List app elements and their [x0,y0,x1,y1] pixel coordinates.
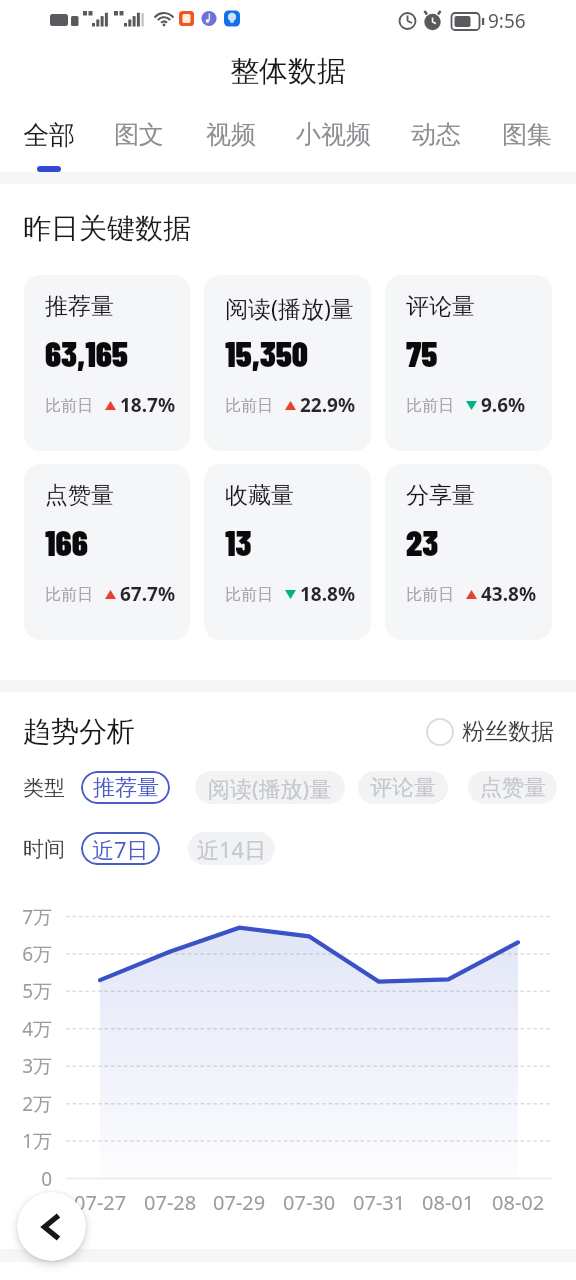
staticText: 比前日 [406,585,454,605]
staticText: 166 [45,521,88,563]
staticText: 动态 [411,119,461,150]
staticText: 比前日 [225,585,273,605]
button[interactable]: 近14日 [188,832,275,865]
staticText: 07-27 [74,1189,127,1215]
staticText: 图集 [502,119,552,150]
staticText: 07-29 [213,1189,266,1215]
staticText: 昨日关键数据 [23,211,191,246]
staticText: 比前日 [406,396,454,416]
staticText: 63,165 [45,332,128,374]
button[interactable]: 阅读(播放)量 [204,275,371,451]
button[interactable]: 粉丝数据 [426,717,554,746]
staticText: 近7日 [92,834,149,864]
staticText: 推荐量 [93,774,159,802]
button[interactable]: Back [17,1192,86,1261]
button[interactable]: 阅读(播放)量 [195,771,345,804]
staticText: 全部 [23,119,75,152]
button[interactable]: 评论量 [358,771,448,804]
staticText: 07-30 [283,1189,336,1215]
staticText: 比前日 [45,396,93,416]
staticText: 6万 [22,941,52,967]
staticText: 小视频 [296,119,371,150]
staticText: 5万 [22,978,52,1004]
staticText: 推荐量 [45,292,114,321]
staticText: 评论量 [406,292,475,321]
staticText: 07-31 [353,1189,406,1215]
staticText: 0 [41,1166,52,1192]
staticText: 08-01 [422,1189,475,1215]
staticText: 图文 [114,119,164,150]
staticText: 分享量 [406,481,475,510]
staticText: 07-28 [144,1189,197,1215]
staticText: 近14日 [197,834,267,864]
staticText: 粉丝数据 [462,717,554,746]
button[interactable]: 视频 [202,102,260,172]
staticText: 67.7% [120,581,176,607]
staticText: 18.7% [120,392,176,418]
button[interactable]: 全部 [20,102,78,172]
staticText: 阅读(播放)量 [225,292,354,323]
staticText: 整体数据 [230,53,346,90]
staticText: 评论量 [370,774,436,802]
button[interactable]: 推荐量 [81,771,170,804]
staticText: 7万 [22,904,52,930]
staticText: 9:56 [488,8,526,34]
staticText: 4万 [22,1016,52,1042]
button[interactable]: 图文 [110,102,168,172]
staticText: 收藏量 [225,481,294,510]
button[interactable]: 分享量 [385,464,552,640]
button[interactable]: 点赞量 [24,464,190,640]
staticText: 阅读(播放)量 [208,773,332,803]
staticText: 13 [225,521,252,563]
staticText: 08-02 [492,1189,545,1215]
staticText: 比前日 [225,396,273,416]
button[interactable]: 图集 [498,102,556,172]
staticText: 点赞量 [480,774,546,802]
staticText: 23 [406,521,439,563]
staticText: 点赞量 [45,481,114,510]
staticText: 时间 [23,836,65,862]
staticText: 趋势分析 [23,714,135,749]
staticText: 视频 [206,119,256,150]
button[interactable]: 近7日 [81,832,160,865]
staticText: 类型 [23,775,65,801]
staticText: 15,350 [225,332,308,374]
staticText: 1万 [22,1128,52,1154]
staticText: 18.8% [300,581,356,607]
staticText: 9.6% [481,392,526,418]
staticText: 2万 [22,1091,52,1117]
staticText: 75 [406,332,438,374]
staticText: 43.8% [481,581,537,607]
staticText: 3万 [22,1053,52,1079]
staticText: 22.9% [300,392,356,418]
button[interactable]: 收藏量 [204,464,371,640]
button[interactable]: 动态 [407,102,465,172]
button[interactable]: 点赞量 [468,771,557,804]
button[interactable]: 推荐量 [24,275,190,451]
button[interactable]: 评论量 [385,275,552,451]
button[interactable]: 小视频 [293,102,373,172]
staticText: 比前日 [45,585,93,605]
